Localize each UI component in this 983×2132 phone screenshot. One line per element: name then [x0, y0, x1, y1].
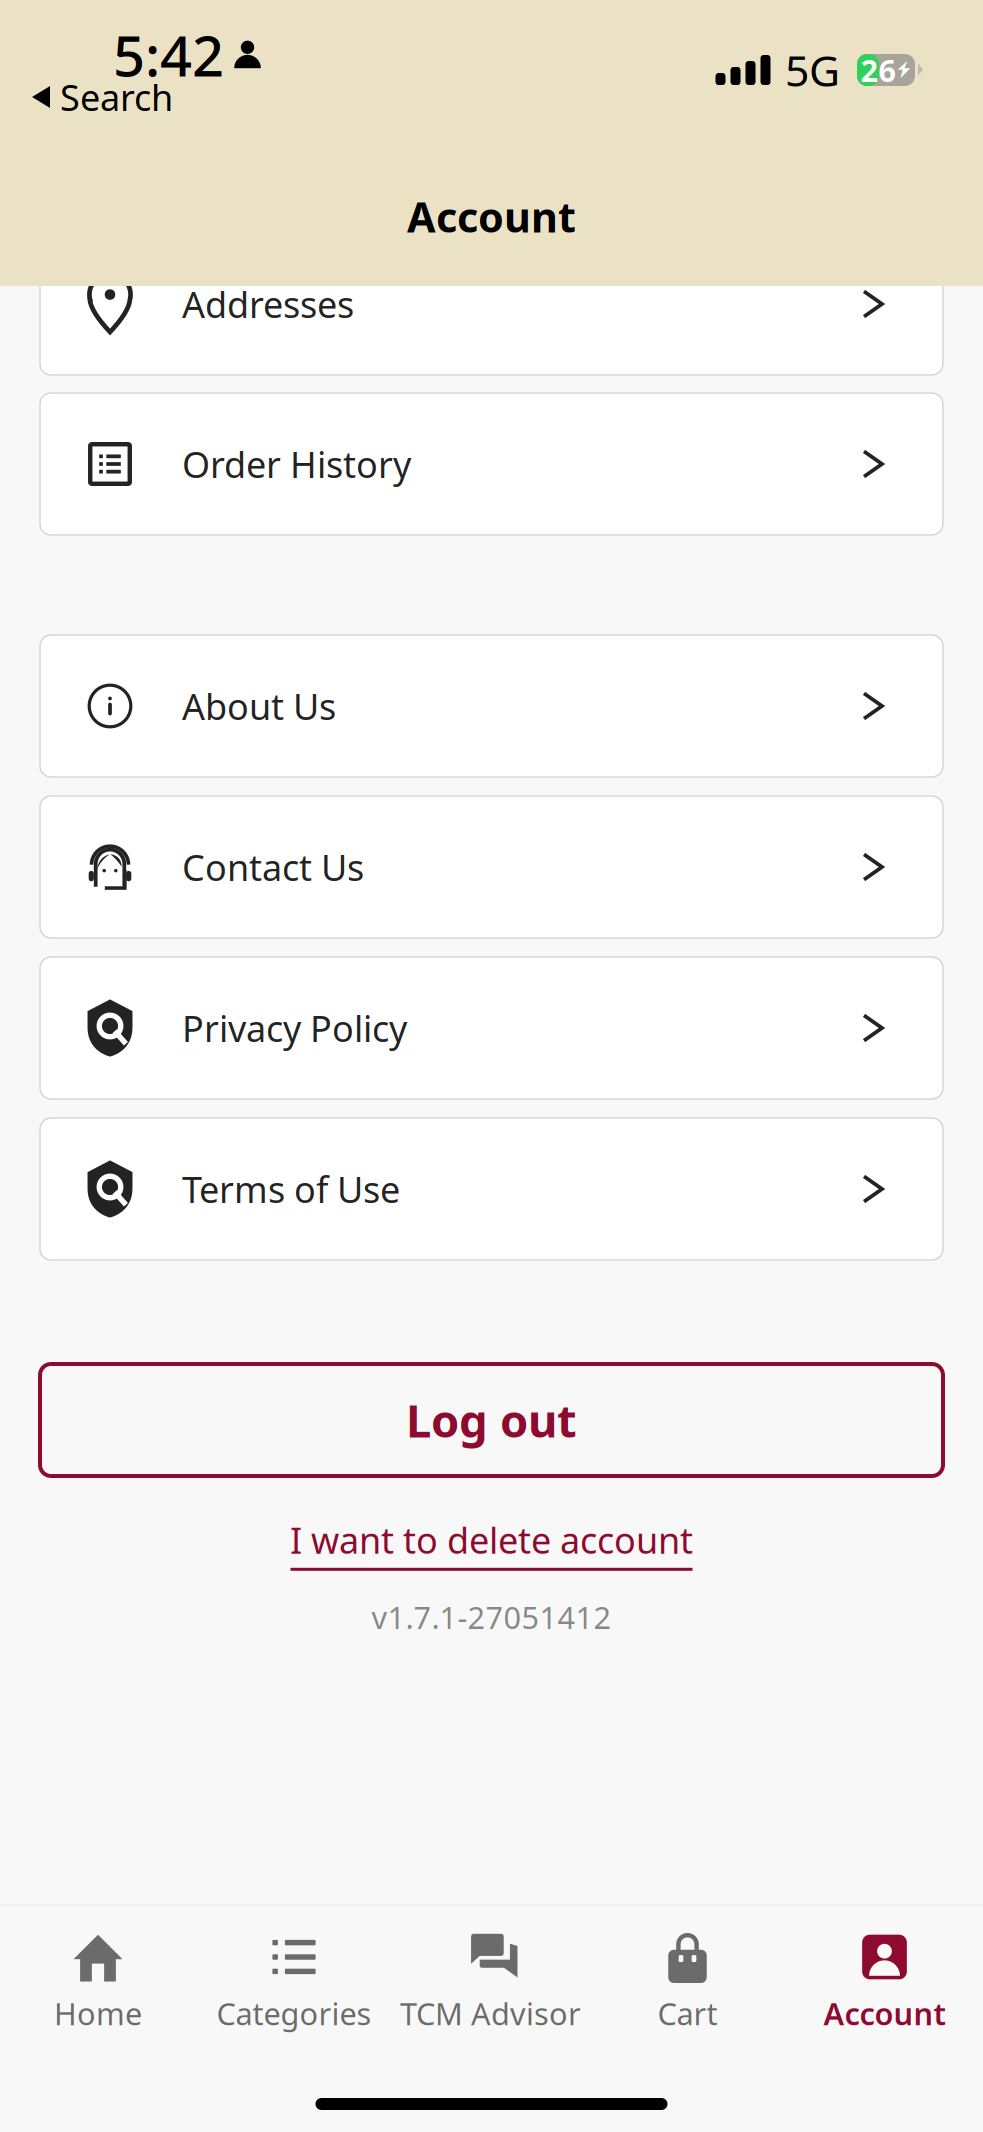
staticText: v1.7.1-27051412 [371, 1597, 611, 1637]
staticText: Account [823, 1993, 945, 2034]
button[interactable]: Home [0, 1932, 196, 2034]
button[interactable]: TCM Advisor [392, 1932, 589, 2034]
staticText: Contact Us [182, 843, 364, 891]
staticText: 5:42 [113, 18, 224, 92]
staticText: Order History [182, 440, 411, 488]
button[interactable]: Order History [40, 393, 943, 535]
staticText: Terms of Use [182, 1165, 400, 1213]
button[interactable]: Account [786, 1932, 983, 2034]
staticText: Categories [216, 1993, 371, 2034]
staticText: Cart [657, 1993, 717, 2034]
staticText: Account [407, 189, 576, 244]
button[interactable]: Cart [589, 1932, 786, 2034]
staticText: Log out [406, 1390, 577, 1450]
staticText: Home [54, 1993, 142, 2034]
button[interactable]: Categories [196, 1932, 392, 2034]
button[interactable]: Terms of Use [40, 1118, 943, 1260]
button[interactable]: About Us [40, 635, 943, 777]
staticText: 5G [785, 42, 840, 98]
staticText: I want to delete account [290, 1516, 693, 1564]
button[interactable]: I want to delete account [290, 1516, 693, 1571]
staticText: Privacy Policy [182, 1004, 407, 1052]
button[interactable]: Privacy Policy [40, 957, 943, 1099]
staticText: TCM Advisor [400, 1993, 581, 2034]
button[interactable]: Log out [40, 1364, 943, 1476]
staticText: 26 [860, 50, 896, 90]
staticText: Search [60, 73, 173, 121]
staticText: About Us [182, 682, 336, 730]
staticText: Addresses [182, 280, 354, 328]
button[interactable]: Contact Us [40, 796, 943, 938]
button[interactable]: Addresses [40, 233, 943, 375]
